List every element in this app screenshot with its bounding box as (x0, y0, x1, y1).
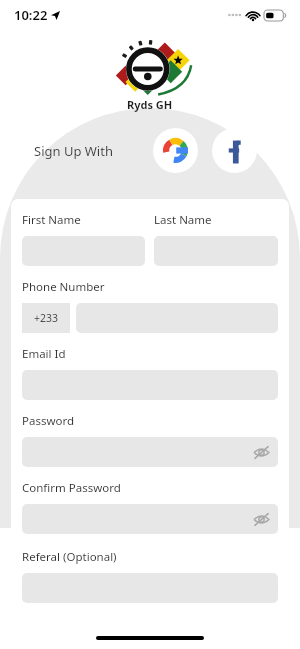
button[interactable]: Toggle password visibility (22, 437, 278, 467)
button[interactable]: Sign up with Google (153, 128, 198, 173)
staticText: Sign Up With (34, 142, 113, 160)
staticText: 10:22 (14, 6, 48, 24)
staticText: Phone Number (22, 279, 105, 295)
staticText: +233 (34, 311, 59, 325)
staticText: First Name (22, 212, 81, 228)
button[interactable]: Toggle password visibility (253, 444, 270, 461)
button[interactable]: Sign up with Facebook (212, 128, 257, 173)
button[interactable]: +233 (22, 303, 70, 333)
staticText: Referal (Optional) (22, 549, 117, 565)
staticText: Confirm Password (22, 480, 121, 496)
staticText: Email Id (22, 346, 66, 362)
staticText: Ryds GH (127, 97, 173, 112)
staticText: Password (22, 413, 75, 429)
button[interactable]: Toggle password visibility (253, 511, 270, 528)
staticText: Last Name (154, 212, 212, 228)
button[interactable]: Toggle password visibility (22, 504, 278, 534)
